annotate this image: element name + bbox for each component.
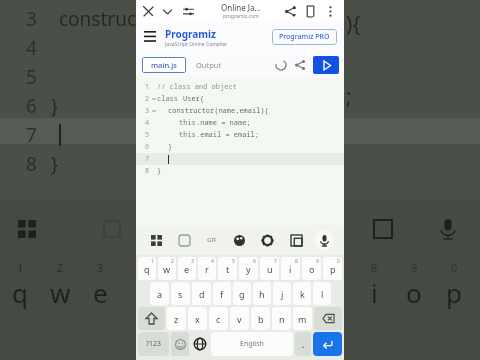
button[interactable]: z: [167, 307, 186, 330]
button[interactable]: Backspace: [314, 307, 342, 330]
button[interactable]: Collapse: [160, 4, 174, 18]
staticText: w: [50, 275, 71, 310]
button[interactable]: Dark mode: [273, 57, 289, 73]
staticText: s: [178, 288, 183, 300]
staticText: q: [12, 275, 28, 310]
button[interactable]: Enter: [313, 332, 342, 356]
button[interactable]: Output: [186, 57, 232, 73]
button[interactable]: Programiz: [165, 27, 228, 48]
button[interactable]: t: [218, 257, 237, 280]
button[interactable]: Themes: [229, 230, 249, 250]
button[interactable]: v: [230, 307, 249, 330]
button[interactable]: x: [188, 307, 207, 330]
staticText: 3: [191, 258, 194, 265]
button[interactable]: Change language: [191, 332, 209, 356]
staticText: }: [51, 151, 59, 177]
button[interactable]: Apps: [146, 230, 166, 250]
staticText: p: [446, 275, 462, 310]
staticText: v: [237, 313, 242, 325]
button[interactable]: Share: [283, 4, 297, 18]
staticText: 5: [145, 130, 150, 140]
button[interactable]: r: [198, 257, 216, 280]
staticText: l: [321, 288, 324, 300]
staticText: 8: [371, 260, 378, 275]
staticText: p: [330, 263, 336, 275]
button[interactable]: Page settings: [181, 4, 195, 18]
staticText: n: [279, 313, 285, 325]
staticText: 8: [295, 258, 298, 265]
button[interactable]: c: [209, 307, 228, 330]
button[interactable]: Voice input: [314, 230, 334, 250]
staticText: constructor(name,email){: [59, 6, 286, 32]
button[interactable]: p: [323, 257, 342, 280]
staticText: w: [163, 263, 171, 275]
button[interactable]: .: [295, 332, 311, 356]
button[interactable]: h: [253, 282, 271, 305]
button[interactable]: Translate: [286, 230, 306, 250]
button[interactable]: s: [171, 282, 190, 305]
button[interactable]: More options: [323, 4, 337, 18]
staticText: 7: [145, 154, 150, 164]
staticText: constructor(name,email){: [168, 106, 269, 116]
button[interactable]: o: [302, 257, 321, 280]
button[interactable]: Stickers: [174, 230, 194, 250]
staticText: o: [309, 263, 315, 275]
button[interactable]: a: [150, 282, 169, 305]
button[interactable]: Shift: [138, 307, 165, 330]
button[interactable]: GIF: [203, 232, 221, 248]
staticText: 9: [316, 258, 319, 265]
staticText: 1: [151, 258, 154, 265]
button[interactable]: y: [239, 257, 258, 280]
staticText: }: [168, 142, 173, 152]
staticText: 4: [211, 258, 214, 265]
staticText: 6: [26, 93, 37, 119]
staticText: Online Ja...: [221, 2, 261, 13]
staticText: 3: [26, 6, 37, 32]
button[interactable]: n: [272, 307, 291, 330]
button[interactable]: f: [213, 282, 231, 305]
button[interactable]: ?123: [138, 332, 169, 356]
staticText: Programiz PRO: [279, 32, 330, 42]
button[interactable]: English: [211, 332, 293, 356]
staticText: this: [179, 130, 196, 140]
button[interactable]: Menu: [142, 29, 158, 45]
button[interactable]: main.js: [142, 57, 186, 73]
button[interactable]: i: [281, 257, 300, 280]
staticText: g: [239, 288, 245, 300]
staticText: o: [406, 275, 422, 310]
staticText: b: [258, 313, 264, 325]
button[interactable]: m: [293, 307, 312, 330]
button[interactable]: q: [138, 257, 156, 280]
staticText: 2: [145, 94, 150, 104]
button[interactable]: Emoji: [171, 332, 189, 356]
button[interactable]: Share code: [292, 57, 308, 73]
staticText: f: [220, 288, 224, 300]
button[interactable]: Programiz PRO: [272, 29, 337, 45]
staticText: 5: [232, 258, 235, 265]
staticText: l;: [340, 80, 352, 110]
staticText: 8: [145, 166, 150, 176]
button[interactable]: g: [233, 282, 251, 305]
staticText: 2: [171, 258, 174, 265]
staticText: 6: [253, 258, 256, 265]
button[interactable]: Bookmark: [303, 4, 317, 18]
staticText: .: [302, 339, 305, 350]
button[interactable]: k: [293, 282, 311, 305]
staticText: }: [51, 93, 59, 119]
button[interactable]: Close: [141, 4, 155, 18]
staticText: x: [195, 313, 200, 325]
button[interactable]: Settings: [257, 230, 277, 250]
staticText: 7: [274, 258, 277, 265]
button[interactable]: u: [260, 257, 279, 280]
staticText: // class and object: [157, 82, 237, 92]
staticText: User{: [183, 94, 204, 104]
button[interactable]: l: [313, 282, 331, 305]
button[interactable]: d: [192, 282, 211, 305]
button[interactable]: e: [178, 257, 196, 280]
staticText: e: [93, 275, 108, 310]
button[interactable]: j: [273, 282, 291, 305]
button[interactable]: 1: [136, 78, 344, 225]
button[interactable]: w: [158, 257, 176, 280]
button[interactable]: Run: [313, 56, 339, 74]
button[interactable]: b: [251, 307, 270, 330]
